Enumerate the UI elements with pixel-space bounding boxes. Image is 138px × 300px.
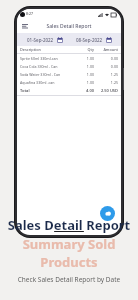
staticText: 1.00 <box>74 80 94 85</box>
staticText: Check Sales Detail Report by Date <box>0 275 138 284</box>
staticText: 1.25 <box>94 80 118 85</box>
staticText: 1.00 <box>74 64 94 69</box>
staticText: 1.00 <box>74 56 94 61</box>
staticText: Sprite 60ml 330ml-can <box>20 56 74 61</box>
staticText: Total <box>20 88 74 93</box>
staticText: 1.00 <box>74 72 94 77</box>
staticText: Sales Detail Report <box>0 216 138 234</box>
staticText: 4.00 <box>74 88 94 93</box>
staticText: 08-Sep-2022 <box>76 37 103 43</box>
staticText: Amount <box>94 47 118 52</box>
button[interactable]: Aquafina 330ml -can <box>17 78 121 86</box>
staticText: Qty <box>74 47 94 52</box>
button[interactable]: Download report <box>100 206 115 221</box>
staticText: 8:27 <box>26 11 33 16</box>
staticText: Coca Cola 330ml - Can <box>20 64 74 69</box>
button[interactable]: 08-Sep-2022 <box>69 33 118 46</box>
staticText: Aquafina 330ml -can <box>20 80 74 85</box>
staticText: 0.00 <box>94 64 118 69</box>
staticText: Summary Sold Products <box>0 235 138 271</box>
staticText: 0.00 <box>94 56 118 61</box>
staticText: 01-Sep-2022 <box>27 37 54 43</box>
button[interactable]: 01-Sep-2022 <box>20 33 69 46</box>
button[interactable]: Open navigation menu <box>20 22 29 31</box>
staticText: 2.50 USD <box>94 88 118 93</box>
staticText: 1.25 <box>94 72 118 77</box>
staticText: Sales Detail Report <box>46 23 92 30</box>
staticText: Description <box>20 47 74 52</box>
button[interactable]: Coca Cola 330ml - Can <box>17 62 121 70</box>
staticText: Soda Water 330ml - Can <box>20 72 74 77</box>
button[interactable]: Soda Water 330ml - Can <box>17 70 121 78</box>
button[interactable]: Sprite 60ml 330ml-can <box>17 54 121 62</box>
